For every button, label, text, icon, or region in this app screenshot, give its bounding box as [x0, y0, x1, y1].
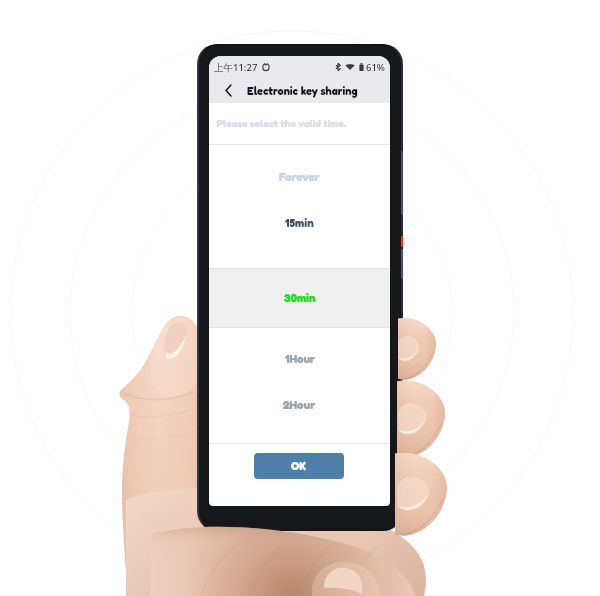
staticText: 30min: [284, 291, 316, 305]
staticText: Forever: [279, 170, 320, 184]
staticText: Electronic key sharing: [247, 84, 358, 97]
button[interactable]: 1Hour: [209, 336, 390, 381]
button[interactable]: 15min: [209, 200, 390, 245]
button[interactable]: 30min: [209, 268, 390, 327]
staticText: OK: [291, 459, 307, 473]
button[interactable]: Forever: [209, 154, 390, 199]
button[interactable]: OK: [254, 453, 344, 479]
staticText: 2Hour: [283, 398, 316, 412]
staticText: 61%: [366, 61, 385, 74]
staticText: 15min: [285, 216, 314, 230]
staticText: Please select the valid time.: [217, 117, 347, 129]
button[interactable]: Back: [209, 78, 247, 103]
button[interactable]: 2Hour: [209, 382, 390, 427]
staticText: 1Hour: [285, 352, 315, 366]
staticText: 上午11:27: [214, 61, 258, 74]
